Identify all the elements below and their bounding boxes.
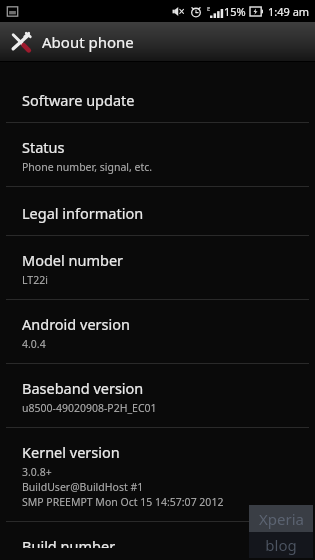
staticText: Kernel version <box>22 442 120 462</box>
staticText: 4.0.4 <box>22 337 46 351</box>
staticText: Phone number, signal, etc. <box>22 160 153 174</box>
staticText: Xperia <box>259 509 304 529</box>
button[interactable]: Kernel version <box>0 428 315 521</box>
staticText: Android version <box>22 314 130 334</box>
staticText: Status <box>22 137 65 157</box>
staticText: SMP PREEMPT Mon Oct 15 14:57:07 2012 <box>22 495 224 509</box>
button[interactable]: Legal information <box>0 187 315 235</box>
button[interactable]: Status <box>0 123 315 186</box>
staticText: Software update <box>22 90 135 110</box>
staticText: 1:49 am <box>268 4 310 19</box>
button[interactable]: Build number <box>0 522 315 560</box>
staticText: About phone <box>42 32 134 52</box>
staticText: 3.0.8+ <box>22 465 52 479</box>
staticText: Model number <box>22 250 124 270</box>
button[interactable]: Android version <box>0 300 315 363</box>
staticText: Legal information <box>22 203 144 223</box>
button[interactable]: Software update <box>0 62 315 122</box>
staticText: Baseband version <box>22 378 144 398</box>
staticText: E <box>207 5 211 13</box>
staticText: blog <box>265 535 297 555</box>
staticText: Build number <box>22 536 116 548</box>
button[interactable]: Model number <box>0 236 315 299</box>
staticText: u8500-49020908-P2H_EC01 <box>22 401 157 415</box>
staticText: 15% <box>224 4 246 19</box>
button[interactable]: Baseband version <box>0 364 315 427</box>
staticText: LT22i <box>22 273 48 287</box>
staticText: BuildUser@BuildHost #1 <box>22 480 144 494</box>
